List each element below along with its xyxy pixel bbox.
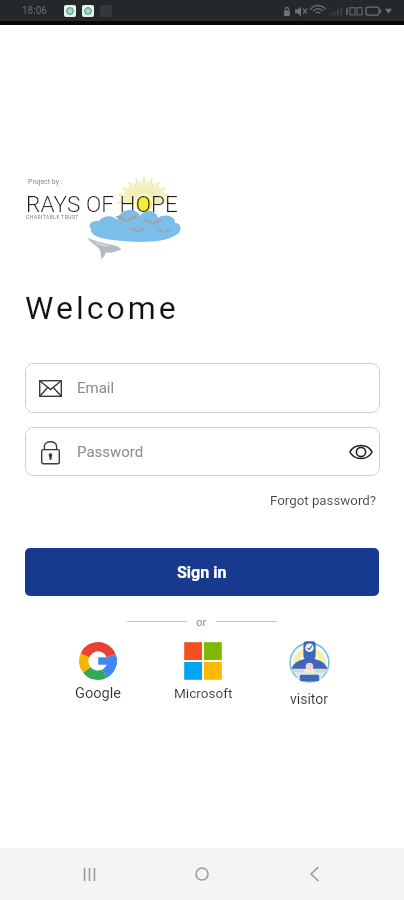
button[interactable]: visitor: [269, 634, 349, 709]
staticText: visitor: [290, 691, 328, 707]
staticText: RAYS OF HOPE: [26, 191, 178, 217]
staticText: Email: [77, 379, 115, 397]
button[interactable]: Email: [25, 363, 380, 413]
button[interactable]: Show password: [343, 434, 379, 470]
button[interactable]: Forgot password?: [268, 491, 379, 511]
button[interactable]: Recent apps: [65, 850, 113, 898]
button[interactable]: Back: [291, 850, 339, 898]
button[interactable]: Password: [25, 427, 380, 476]
staticText: Password: [77, 443, 144, 461]
staticText: 18:06: [22, 5, 47, 17]
staticText: Welcome: [25, 289, 179, 327]
staticText: Sign in: [177, 563, 227, 582]
staticText: Google: [75, 684, 122, 701]
staticText: CHARITABLE TRUST: [26, 214, 79, 220]
button[interactable]: Google: [58, 636, 138, 702]
staticText: Project by :: [28, 178, 63, 186]
button[interactable]: Microsoft: [163, 636, 243, 703]
staticText: or: [196, 615, 207, 628]
button[interactable]: Sign in: [25, 548, 379, 596]
staticText: Microsoft: [174, 685, 233, 701]
button[interactable]: Home: [178, 850, 226, 898]
